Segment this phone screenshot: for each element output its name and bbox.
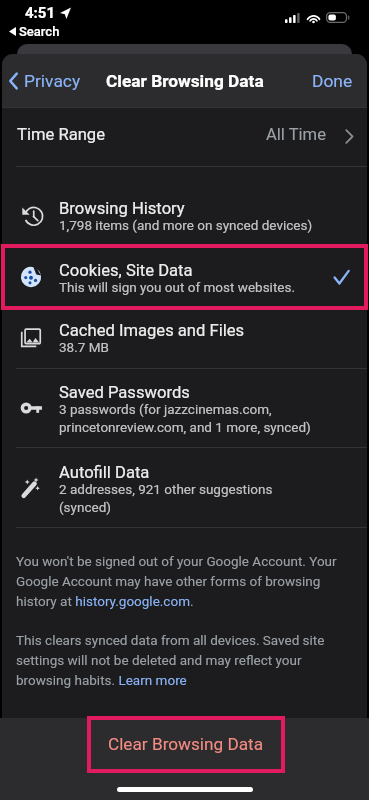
staticText: Done [312, 71, 353, 91]
staticText: Clear Browsing Data [106, 71, 264, 91]
staticText: Browsing History [59, 199, 185, 218]
staticText: Privacy [24, 71, 81, 91]
button[interactable]: history at history.google.com. [16, 593, 194, 609]
staticText: Cookies, Site Data [59, 261, 193, 280]
button[interactable]: Time Range [2, 108, 367, 166]
button[interactable]: browsing habits. Learn more [16, 672, 187, 688]
staticText: settings will not be deleted and may ref… [16, 652, 302, 668]
staticText: (synced) [59, 499, 111, 515]
staticText: history at history.google.com. [16, 593, 194, 609]
staticText: 38.7 MB [59, 339, 109, 355]
button[interactable]: Saved Passwords [2, 368, 367, 447]
staticText: This will sign you out of most websites. [59, 279, 295, 295]
button[interactable]: Browsing History [2, 166, 367, 246]
staticText: All Time [266, 125, 326, 144]
staticText: princetonreview.com, and 1 more, synced) [59, 419, 311, 435]
staticText: Google Account may have other forms of b… [16, 573, 321, 589]
staticText: 1,798 items (and more on synced devices) [59, 217, 313, 233]
staticText: This clears synced data from all devices… [16, 632, 325, 648]
staticText: 2 addresses, 921 other suggestions [59, 481, 273, 497]
staticText: Saved Passwords [59, 383, 190, 402]
staticText: Time Range [17, 125, 105, 144]
button[interactable]: Back to Search [9, 24, 60, 39]
staticText: browsing habits. Learn more [16, 672, 187, 688]
staticText: Search [19, 24, 60, 39]
staticText: Clear Browsing Data [108, 734, 264, 754]
button[interactable]: Privacy [4, 63, 89, 99]
staticText: Autofill Data [59, 463, 150, 482]
button[interactable]: Cookies, Site Data [2, 246, 367, 308]
button[interactable]: Done [306, 63, 359, 99]
staticText: 4:51 [25, 4, 56, 22]
other: Selected [334, 270, 349, 285]
staticText: Cached Images and Files [59, 321, 245, 340]
button[interactable]: Clear Browsing Data [87, 716, 285, 773]
staticText: You won't be signed out of your Google A… [16, 553, 337, 569]
button[interactable]: Autofill Data [2, 447, 367, 527]
staticText: 3 passwords (for jazzcinemas.com, [59, 401, 272, 417]
button[interactable]: Cached Images and Files [2, 308, 367, 368]
